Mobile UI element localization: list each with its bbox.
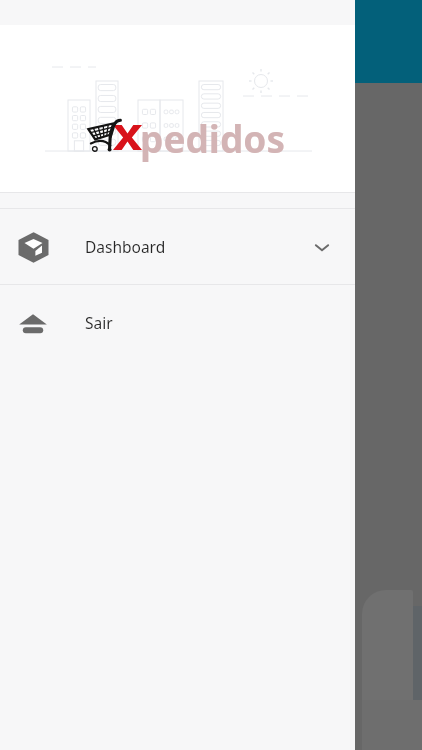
staticText: Sair xyxy=(85,312,113,333)
button[interactable]: Dashboard xyxy=(0,209,355,284)
staticText: pedidos xyxy=(140,113,286,163)
other: Expand xyxy=(313,238,331,256)
staticText: Dashboard xyxy=(85,236,166,257)
other: Sair xyxy=(21,311,45,335)
button[interactable]: Sair xyxy=(0,285,355,360)
other: Dashboard xyxy=(21,235,46,260)
